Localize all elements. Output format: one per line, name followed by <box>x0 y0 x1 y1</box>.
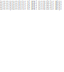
staticText: Lorem ipsum dolor sit amet consectetur a… <box>0 5 62 8</box>
staticText: Lorem ipsum dolor sit amet consectetur a… <box>0 0 62 3</box>
staticText: Lorem ipsum dolor sit amet consectetur a… <box>0 2 62 6</box>
staticText: Lorem ipsum dolor sit amet consectetur a… <box>0 7 62 10</box>
